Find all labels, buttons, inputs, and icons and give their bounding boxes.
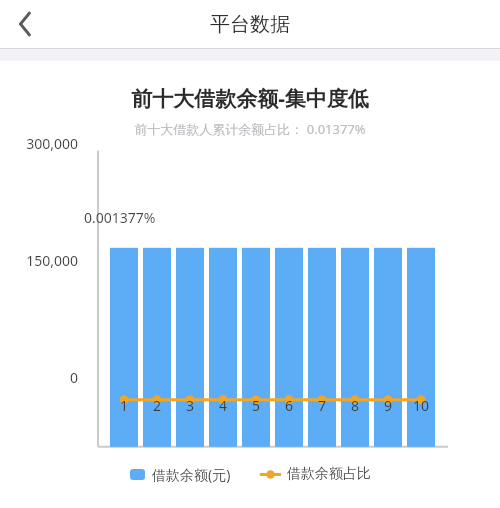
staticText: 6 <box>279 396 299 415</box>
staticText: 150,000 <box>0 251 78 270</box>
staticText: 借款余额占比 <box>287 465 371 483</box>
staticText: 300,000 <box>0 134 78 153</box>
button[interactable]: Back <box>0 0 48 48</box>
staticText: 10 <box>411 396 431 415</box>
staticText: 前十大借款余额-集中度低 <box>0 84 500 113</box>
staticText: 借款余额(元) <box>152 465 231 484</box>
staticText: 0 <box>0 368 78 387</box>
staticText: 9 <box>378 396 398 415</box>
staticText: 7 <box>312 396 332 415</box>
staticText: 2 <box>147 396 167 415</box>
staticText: 前十大借款人累计余额占比： 0.01377% <box>0 120 500 138</box>
button[interactable]: 借款余额占比 <box>258 461 374 487</box>
staticText: 3 <box>180 396 200 415</box>
staticText: 5 <box>246 396 266 415</box>
staticText: 平台数据 <box>210 12 290 37</box>
staticText: 4 <box>213 396 233 415</box>
button[interactable]: 借款余额(元) <box>127 461 234 488</box>
staticText: 0.001377% <box>84 208 156 227</box>
staticText: 8 <box>345 396 365 415</box>
staticText: 1 <box>114 396 134 415</box>
